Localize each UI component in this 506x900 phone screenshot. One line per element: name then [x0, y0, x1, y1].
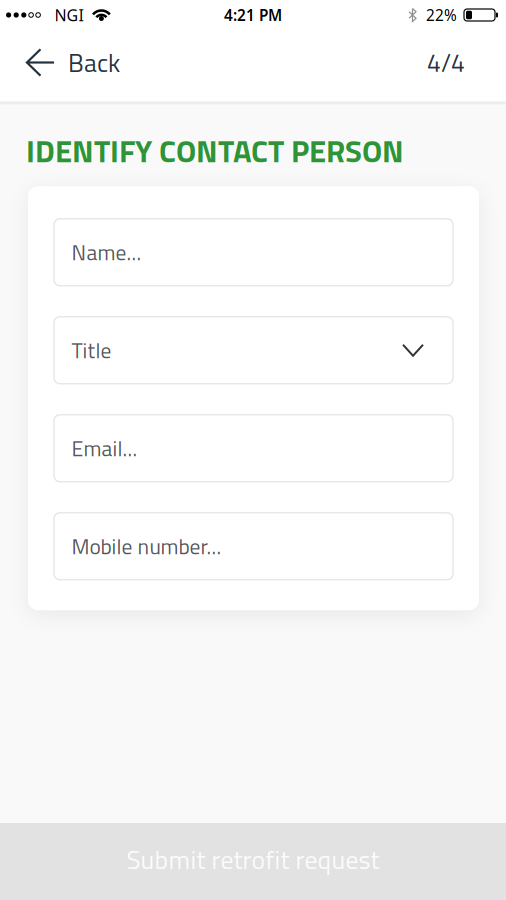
button[interactable]: Mobile number... — [54, 513, 453, 580]
staticText: 4/4 — [427, 44, 465, 81]
button[interactable]: Submit retrofit request — [0, 823, 506, 900]
staticText: Name... — [71, 236, 141, 268]
staticText: Title — [71, 334, 111, 366]
staticText: NGI — [54, 4, 83, 26]
button[interactable]: Title — [54, 317, 453, 384]
staticText: Mobile number... — [71, 530, 221, 562]
button[interactable]: Email... — [54, 415, 453, 482]
staticText: 22% — [426, 5, 457, 25]
staticText: Back — [68, 43, 120, 82]
staticText: 4:21 PM — [224, 5, 282, 25]
staticText: Email... — [71, 432, 137, 464]
button[interactable]: Name... — [54, 219, 453, 286]
staticText: IDENTIFY CONTACT PERSON — [26, 127, 404, 174]
staticText: Submit retrofit request — [126, 840, 379, 879]
button[interactable]: Back — [0, 43, 120, 88]
